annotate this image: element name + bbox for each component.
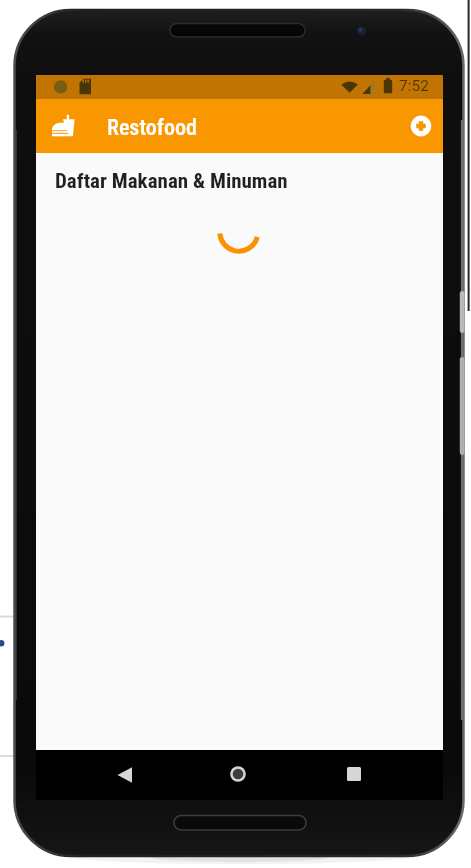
- button[interactable]: [401, 106, 441, 146]
- staticText: Daftar Makanan & Minuman: [55, 169, 288, 194]
- button[interactable]: [46, 108, 82, 144]
- button[interactable]: [214, 750, 262, 798]
- staticText: 7:52: [399, 77, 429, 95]
- staticText: Restofood: [107, 115, 197, 141]
- button[interactable]: [101, 751, 149, 799]
- button[interactable]: [330, 750, 378, 798]
